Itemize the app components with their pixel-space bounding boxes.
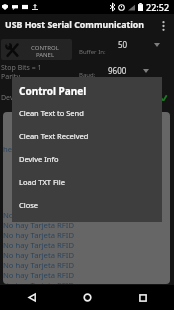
button[interactable]: Clean Text Received — [12, 124, 162, 147]
button[interactable]: Clean Text to Send — [12, 101, 162, 124]
button[interactable]: 9600 — [108, 64, 149, 77]
staticText: Parity — [1, 72, 20, 82]
staticText: Clean Text Received — [19, 131, 89, 141]
staticText: 50 — [118, 39, 128, 50]
staticText: CONTROL PANEL — [31, 44, 59, 59]
staticText: No hay Tarjeta RFID No hay Tarjeta RFID … — [3, 210, 75, 284]
button[interactable]: 50 — [118, 38, 160, 51]
staticText: Load TXT File — [19, 177, 65, 187]
button[interactable]: Back — [8, 285, 56, 310]
button[interactable]: Home — [63, 285, 111, 310]
staticText: Close — [19, 200, 39, 210]
staticText: he — [3, 144, 13, 154]
button[interactable]: More options — [152, 14, 174, 38]
button[interactable]: CONTROL PANEL — [1, 39, 72, 60]
staticText: Stop Bits = 1 — [1, 63, 42, 73]
staticText: 22:52 — [146, 1, 170, 13]
staticText: Buffer In: — [79, 48, 106, 56]
staticText: Devive Info — [19, 154, 59, 164]
staticText: Control Panel — [19, 84, 87, 98]
staticText: Baud: — [79, 71, 96, 79]
staticText: 9600 — [108, 65, 127, 76]
button[interactable]: Close — [12, 193, 162, 216]
staticText: Clean Text to Send — [19, 108, 84, 118]
button[interactable]: Recents — [119, 285, 167, 310]
button[interactable]: Devive Info — [12, 147, 162, 170]
staticText: Device — [1, 93, 23, 103]
button[interactable]: Load TXT File — [12, 170, 162, 193]
staticText: USB Host Serial Communication — [5, 19, 145, 31]
